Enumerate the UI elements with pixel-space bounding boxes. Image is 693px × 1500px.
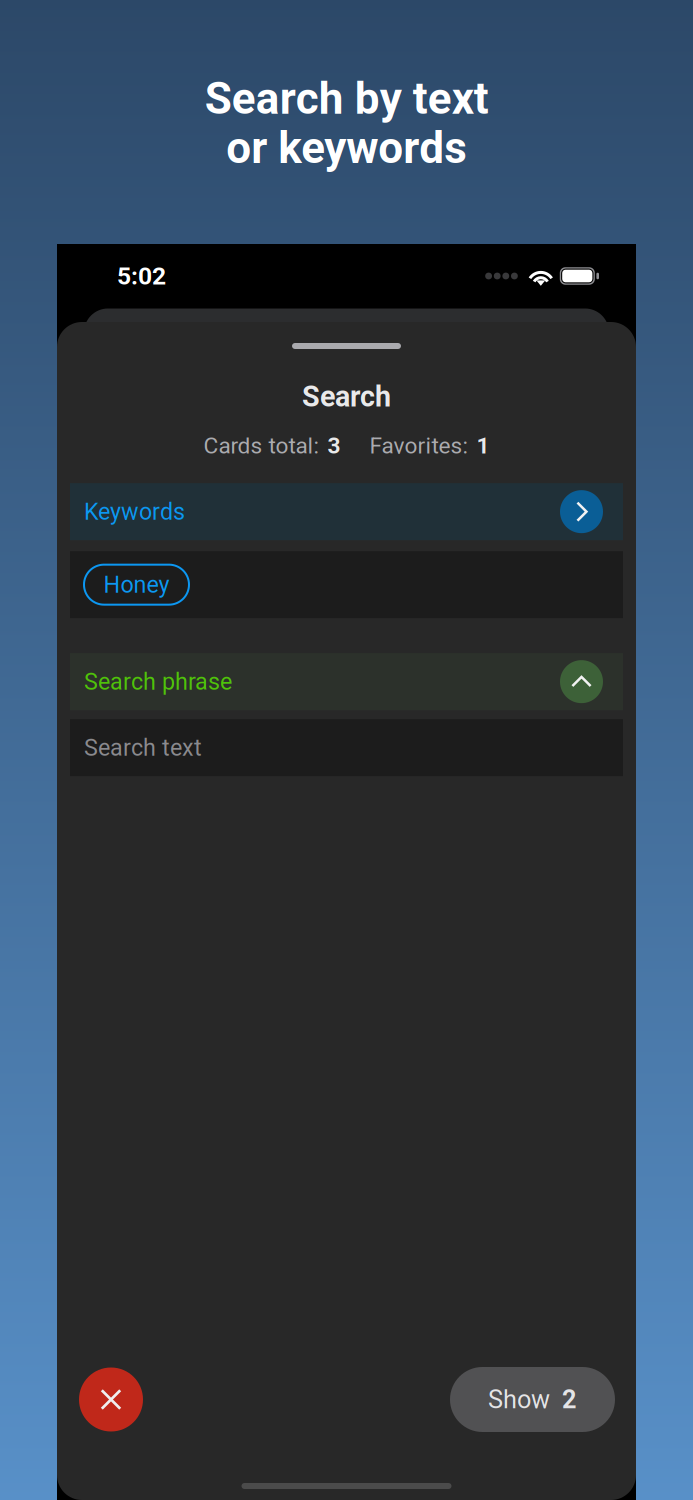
- staticText: Search by text or keywords: [204, 73, 488, 174]
- staticText: Search: [302, 380, 391, 414]
- staticText: 5:02: [117, 261, 166, 290]
- staticText: Show: [488, 1385, 550, 1414]
- staticText: Honey: [103, 571, 169, 598]
- staticText: Favorites:: [369, 433, 467, 459]
- staticText: 1: [476, 433, 489, 459]
- button[interactable]: Honey: [84, 565, 189, 605]
- staticText: Cards total:: [203, 433, 318, 459]
- button[interactable]: Keywords: [70, 483, 623, 540]
- button[interactable]: Search phrase: [70, 653, 623, 710]
- staticText: Keywords: [84, 498, 185, 525]
- staticText: 2: [562, 1385, 577, 1414]
- staticText: 3: [327, 433, 340, 459]
- staticText: Search text: [84, 734, 202, 761]
- button[interactable]: Clear search: [79, 1367, 143, 1431]
- staticText: Search phrase: [84, 668, 232, 695]
- button[interactable]: Show: [450, 1367, 615, 1432]
- button[interactable]: Search text: [70, 719, 623, 776]
